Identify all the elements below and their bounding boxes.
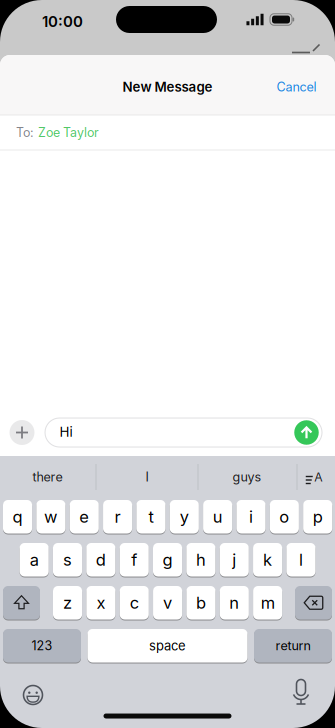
button[interactable]: p	[303, 499, 332, 534]
staticText: I	[145, 470, 148, 484]
staticText: c	[130, 593, 139, 612]
button[interactable]: n	[220, 585, 249, 620]
button[interactable]: e	[70, 499, 99, 534]
staticText: n	[229, 593, 239, 612]
staticText: space	[149, 638, 186, 653]
button[interactable]: k	[253, 542, 282, 577]
staticText: f	[131, 550, 137, 569]
button[interactable]: b	[186, 585, 215, 620]
staticText: q	[13, 507, 23, 526]
button[interactable]: A	[297, 460, 331, 494]
staticText: a	[30, 550, 39, 569]
button[interactable]: I	[97, 460, 197, 494]
staticText: i	[249, 507, 253, 526]
button[interactable]: a	[20, 542, 49, 577]
staticText: 123	[31, 638, 52, 653]
staticText: Zoe Taylor	[38, 125, 99, 140]
button[interactable]: o	[270, 499, 299, 534]
button[interactable]	[294, 420, 319, 445]
staticText: z	[63, 593, 72, 612]
staticText: u	[213, 507, 223, 526]
staticText: k	[263, 550, 272, 569]
button[interactable]: l	[286, 542, 315, 577]
staticText: l	[299, 550, 303, 569]
staticText: return	[275, 638, 310, 653]
button[interactable]	[295, 585, 332, 620]
button[interactable]: Cancel	[276, 80, 316, 94]
button[interactable]: guys	[200, 460, 294, 494]
staticText: To:	[16, 125, 34, 140]
staticText: A	[314, 470, 322, 484]
button[interactable]	[288, 679, 314, 705]
button[interactable]: m	[253, 585, 282, 620]
button[interactable]: g	[153, 542, 182, 577]
button[interactable]: f	[120, 542, 149, 577]
button[interactable]	[3, 585, 40, 620]
staticText: r	[115, 507, 121, 526]
staticText: y	[180, 507, 189, 526]
button[interactable]: To:	[0, 115, 335, 149]
staticText: 10:00	[42, 13, 83, 30]
button[interactable]: x	[86, 585, 115, 620]
button[interactable]: s	[53, 542, 82, 577]
button[interactable]	[20, 682, 46, 708]
staticText: j	[232, 550, 236, 569]
button[interactable]: r	[103, 499, 132, 534]
staticText: Cancel	[276, 80, 316, 94]
button[interactable]: y	[170, 499, 199, 534]
staticText: p	[313, 507, 323, 526]
button[interactable]	[9, 420, 34, 445]
staticText: b	[196, 593, 206, 612]
staticText: w	[44, 507, 58, 526]
staticText: there	[32, 470, 62, 484]
button[interactable]: c	[120, 585, 149, 620]
button[interactable]: return	[254, 628, 332, 663]
button[interactable]: z	[53, 585, 82, 620]
staticText: o	[279, 507, 289, 526]
staticText: m	[261, 593, 275, 612]
button[interactable]: h	[186, 542, 215, 577]
staticText: x	[96, 593, 105, 612]
button[interactable]: 123	[3, 628, 81, 663]
button[interactable]: i	[236, 499, 266, 534]
staticText: t	[148, 507, 153, 526]
button[interactable]: t	[136, 499, 165, 534]
staticText: d	[96, 550, 106, 569]
button[interactable]: d	[86, 542, 115, 577]
staticText: Hi	[59, 424, 72, 440]
button[interactable]: u	[203, 499, 232, 534]
staticText: New Message	[122, 79, 212, 95]
button[interactable]: v	[153, 585, 182, 620]
button[interactable]: j	[220, 542, 249, 577]
staticText: e	[79, 507, 89, 526]
staticText: v	[163, 593, 172, 612]
staticText: g	[163, 550, 173, 569]
staticText: guys	[232, 470, 261, 484]
button[interactable]: there	[0, 460, 94, 494]
button[interactable]: space	[87, 628, 247, 663]
button[interactable]: w	[36, 499, 65, 534]
button[interactable]: q	[3, 499, 32, 534]
staticText: s	[63, 550, 72, 569]
staticText: h	[196, 550, 206, 569]
